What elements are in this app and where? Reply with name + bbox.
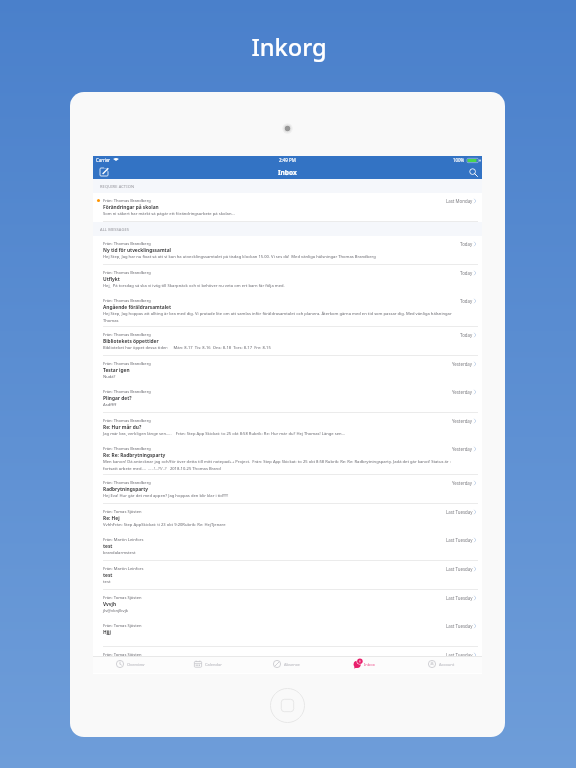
button[interactable]: Från: Thomas Brandberg [93,384,482,413]
staticText: Bibliotekets öppettider [103,338,159,345]
staticText: Inbox [364,662,375,667]
staticText: Yesterday [452,480,473,486]
staticText: VvhhFrån: Step AppSkickat: ti 23 okt 9:2… [103,522,226,528]
button[interactable]: Från: Thomas Brandberg [93,236,482,265]
button[interactable]: Från: Thomas Brandberg [93,356,482,385]
staticText: Re: Hur mår du? [103,424,142,431]
staticText: Yesterday [452,389,473,395]
staticText: Inbox [278,168,297,177]
button[interactable]: Compose message [98,166,110,178]
staticText: Today [460,270,473,276]
button[interactable]: Overview [93,657,171,673]
button[interactable]: Från: Martin Leinfors [93,532,482,561]
staticText: Yesterday [452,361,473,367]
button[interactable]: Account [405,657,482,673]
staticText: Från: Tomas Sjösten [103,509,142,515]
staticText: Re: Re: Radbrytningsparty [103,452,166,459]
staticText: Från: Tomas Sjösten [103,595,142,601]
staticText: Från: Thomas Brandberg [103,389,151,395]
staticText: Absence [284,662,300,667]
staticText: Last Tuesday [446,509,473,515]
staticText: Radbrytningsparty [103,486,149,493]
button[interactable]: Search [468,167,479,178]
staticText: Hej Step, Jag har nu fixat så att vi kan… [103,254,376,260]
staticText: Ny tid för utvecklingssamtal [103,247,171,254]
button[interactable]: Absence [249,657,327,673]
staticText: Från: Thomas Brandberg [103,418,151,424]
button[interactable]: Från: Thomas Brandberg [93,265,482,294]
staticText: Angående föräldrarsamtalet [103,304,172,311]
button[interactable]: Från: Thomas Brandberg [93,327,482,356]
staticText: Från: Thomas Brandberg [103,241,151,247]
staticText: test [103,572,113,579]
staticText: REQUIRE ACTION [100,184,135,189]
button[interactable]: Inbox [327,657,405,673]
staticText: Utflykt [103,276,120,283]
button[interactable]: Från: Thomas Brandberg [93,475,482,504]
staticText: Last Tuesday [446,595,473,601]
staticText: Hej, På torsdag så ska vi iväg till Skar… [103,283,285,289]
staticText: 100% [453,157,465,163]
staticText: Last Tuesday [446,652,473,656]
staticText: Från: Martin Leinfors [103,537,144,543]
staticText: Men kanon! Då antecknar jag och/för över… [103,459,455,471]
staticText: ALL MESSAGES [100,227,130,232]
staticText: Re: Hej [103,515,120,522]
staticText: Vvvjh [103,601,117,608]
staticText: Från: Thomas Brandberg [103,480,151,486]
staticText: Last Tuesday [446,537,473,543]
staticText: Förändringar på skolan [103,204,159,211]
staticText: Nudå? [103,374,116,380]
staticText: Carrier [96,157,111,163]
staticText: jlv@vknjlkvjk [103,608,129,614]
staticText: Yesterday [452,446,473,452]
button[interactable]: Från: Thomas Brandberg [93,441,482,475]
staticText: Från: Thomas Brandberg [103,198,151,204]
staticText: Jag mår bra, verkligen länge sen..... Fr… [103,431,346,437]
staticText: Från: Tomas Sjösten [103,652,142,656]
button[interactable]: Calendar [171,657,249,673]
staticText: Last Monday [446,198,473,204]
staticText: Från: Thomas Brandberg [103,332,151,338]
button[interactable]: Från: Thomas Brandberg [93,193,482,222]
staticText: Från: Tomas Sjösten [103,623,142,629]
button[interactable]: Från: Tomas Sjösten [93,504,482,533]
staticText: Plingar det? [103,395,132,402]
staticText: Last Tuesday [446,623,473,629]
staticText: Från: Thomas Brandberg [103,361,151,367]
staticText: Asdffff [103,402,117,408]
button[interactable]: Från: Tomas Sjösten [93,647,482,656]
staticText: Inkorg [1,31,576,63]
staticText: test [103,579,111,585]
button[interactable]: Från: Thomas Brandberg [93,293,482,327]
staticText: Today [460,241,473,247]
staticText: Från: Thomas Brandberg [103,446,151,452]
staticText: Biblioteket har öppet dessa tider: Mån: … [103,345,271,351]
staticText: Från: Thomas Brandberg [103,298,151,304]
button[interactable]: Från: Martin Leinfors [93,561,482,590]
staticText: test [103,543,113,550]
staticText: Från: Thomas Brandberg [103,270,151,276]
staticText: brandalarmstest [103,550,136,556]
staticText: Calendar [205,662,222,667]
staticText: Hej Eva! Hur går det med appen? Jag hopp… [103,493,229,499]
button[interactable]: Från: Thomas Brandberg [93,413,482,442]
staticText: Overview [127,662,145,667]
staticText: Account [439,662,455,667]
staticText: Hej Step, Jag hoppas att allting är bra … [103,311,455,323]
staticText: Hjjj [103,629,111,636]
staticText: Som ni säkert har märkt så pågår ett för… [103,211,235,217]
staticText: Today [460,332,473,338]
button[interactable]: Från: Tomas Sjösten [93,618,482,647]
staticText: Testar igen [103,367,130,374]
staticText: Last Tuesday [446,566,473,572]
staticText: Yesterday [452,418,473,424]
staticText: Today [460,298,473,304]
button[interactable]: Från: Tomas Sjösten [93,590,482,619]
staticText: Från: Martin Leinfors [103,566,144,572]
staticText: 2:49 PM [279,157,296,163]
